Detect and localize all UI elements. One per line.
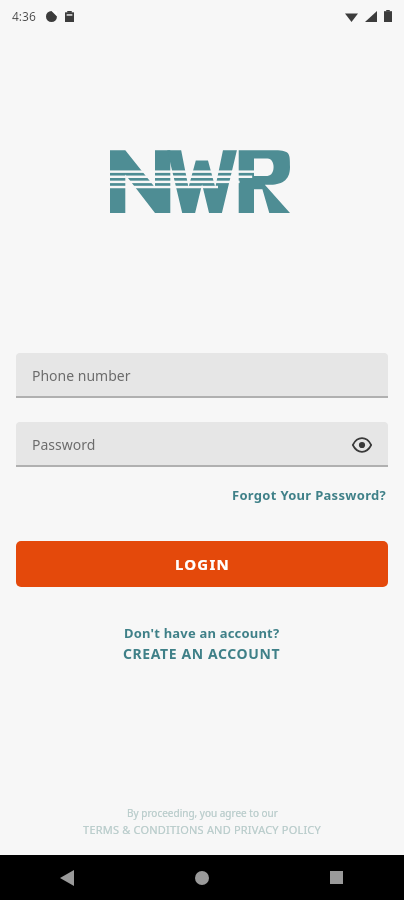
button[interactable]: Password [16, 422, 388, 467]
staticText: Password [32, 435, 96, 454]
staticText: Forgot Your Password? [232, 486, 386, 504]
button[interactable]: Don't have an account? [117, 623, 287, 664]
staticText: By proceeding, you agree to our [127, 806, 278, 820]
staticText: TERMS & CONDITIONS AND PRIVACY POLICY [83, 822, 321, 837]
staticText: LOGIN [175, 554, 230, 574]
button[interactable]: Recent apps [269, 855, 404, 900]
button[interactable]: LOGIN [16, 541, 388, 587]
staticText: CREATE AN ACCOUNT [123, 644, 281, 663]
button[interactable]: TERMS & CONDITIONS AND PRIVACY POLICY [83, 822, 321, 837]
staticText: Don't have an account? [124, 624, 280, 642]
staticText: 4:36 [12, 8, 36, 24]
button[interactable]: Show password [348, 431, 376, 459]
button[interactable]: Home [134, 855, 269, 900]
button[interactable]: Forgot Your Password? [230, 484, 388, 506]
button[interactable]: Phone number [16, 353, 388, 398]
staticText: Phone number [32, 366, 131, 385]
button[interactable]: Back [0, 855, 134, 900]
